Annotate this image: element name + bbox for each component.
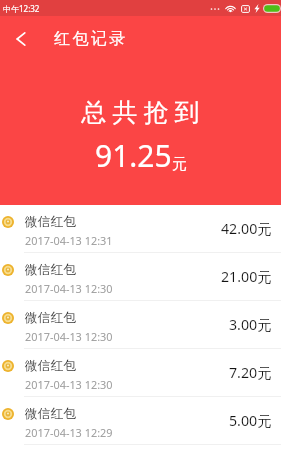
staticText: 红包记录 [54, 29, 128, 49]
button[interactable]: 微信红包 [0, 205, 281, 252]
button[interactable]: Back [0, 16, 41, 59]
staticText: 微信红包 [25, 214, 77, 230]
staticText: 微信红包 [25, 358, 77, 374]
button[interactable]: 微信红包 [0, 301, 281, 348]
staticText: 总共抢到 [81, 97, 206, 128]
staticText: 91.25 [95, 135, 172, 176]
staticText: 中午12:32 [3, 3, 40, 14]
staticText: 2017-04-13 12:30 [25, 281, 113, 296]
staticText: 微信红包 [25, 406, 77, 422]
staticText: 5.00元 [229, 411, 272, 430]
staticText: 2017-04-13 12:30 [25, 377, 113, 392]
staticText: 7.20元 [229, 363, 272, 382]
other: Battery [263, 4, 281, 13]
staticText: 微信红包 [25, 310, 77, 326]
staticText: 21.00元 [221, 267, 272, 286]
staticText: 3.00元 [229, 315, 272, 334]
staticText: 42.00元 [221, 219, 272, 238]
staticText: 微信红包 [25, 262, 77, 278]
button[interactable]: 微信红包 [0, 349, 281, 396]
staticText: 2017-04-13 12:30 [25, 329, 113, 344]
staticText: 2017-04-13 12:31 [25, 233, 113, 248]
staticText: 元 [172, 155, 187, 174]
button[interactable]: 微信红包 [0, 397, 281, 444]
button[interactable]: 微信红包 [0, 253, 281, 300]
staticText: 2017-04-13 12:29 [25, 425, 113, 440]
